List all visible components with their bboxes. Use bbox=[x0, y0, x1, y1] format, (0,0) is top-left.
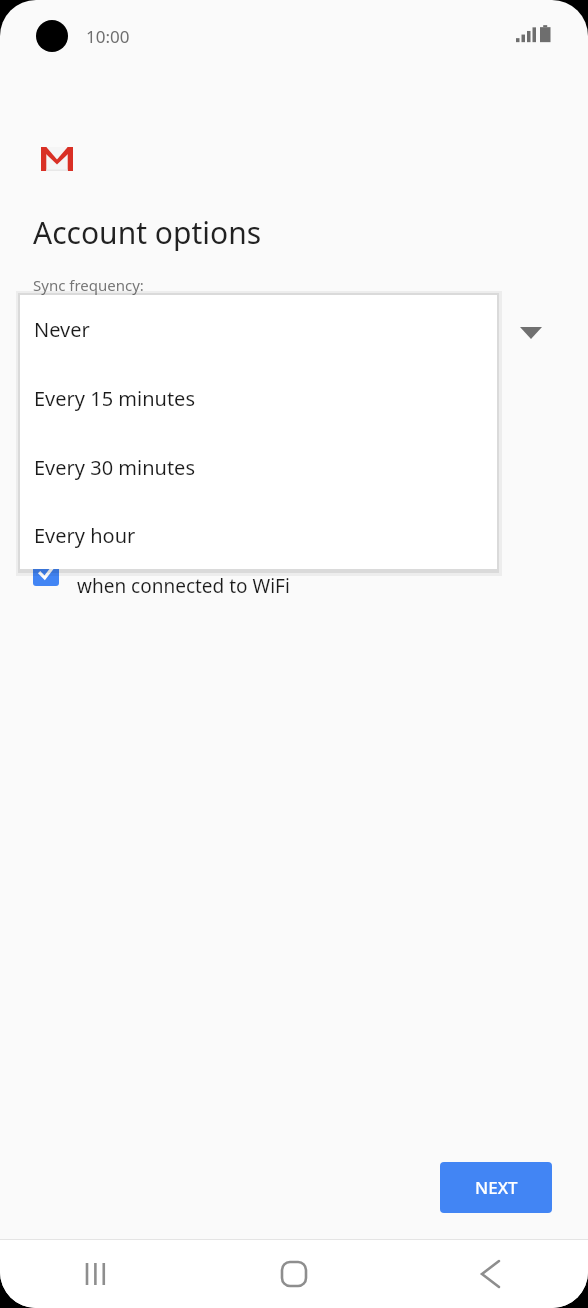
button[interactable]: Home bbox=[196, 1240, 392, 1308]
staticText: when connected to WiFi bbox=[77, 573, 290, 599]
staticText: Account options bbox=[33, 212, 262, 253]
staticText: Never bbox=[34, 316, 90, 343]
button[interactable]: Recent apps bbox=[0, 1240, 196, 1308]
button[interactable]: Every hour bbox=[20, 502, 497, 569]
button[interactable]: Every 30 minutes bbox=[20, 433, 497, 502]
button[interactable]: Every 15 minutes bbox=[20, 364, 497, 433]
staticText: Download attachments bbox=[77, 540, 285, 566]
staticText: Every hour bbox=[34, 522, 136, 549]
button[interactable]: Download attachments bbox=[33, 540, 553, 599]
staticText: Every 15 minutes bbox=[34, 385, 195, 412]
staticText: Every 30 minutes bbox=[34, 454, 195, 481]
button[interactable]: Back bbox=[392, 1240, 588, 1308]
staticText: Sync frequency: bbox=[33, 275, 144, 295]
button[interactable]: NEXT bbox=[440, 1162, 552, 1213]
button[interactable]: Open sync frequency dropdown bbox=[505, 310, 557, 354]
staticText: 10:00 bbox=[86, 25, 130, 48]
button[interactable]: Never bbox=[20, 295, 497, 364]
staticText: NEXT bbox=[475, 1176, 518, 1199]
